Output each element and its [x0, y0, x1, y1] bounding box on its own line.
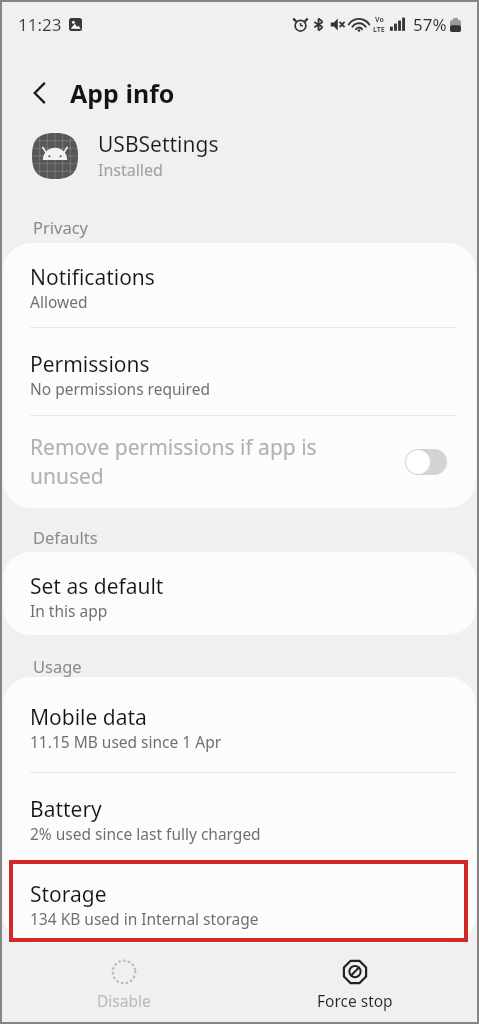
button[interactable]: Battery: [3, 773, 476, 860]
staticText: 57%: [413, 13, 447, 36]
staticText: Defaults: [33, 526, 98, 548]
staticText: Permissions: [30, 350, 150, 379]
staticText: In this app: [30, 600, 108, 621]
staticText: Force stop: [317, 990, 393, 1011]
button[interactable]: Notifications: [3, 243, 476, 327]
staticText: Disable: [97, 990, 151, 1011]
staticText: Battery: [30, 795, 102, 824]
button[interactable]: Force stop: [239, 949, 471, 1022]
staticText: Mobile data: [30, 703, 147, 732]
staticText: Allowed: [30, 291, 88, 312]
staticText: Vo: [375, 15, 384, 25]
staticText: 11:23: [18, 13, 62, 36]
staticText: 2% used since last fully charged: [30, 823, 261, 844]
staticText: 134 KB used in Internal storage: [30, 908, 259, 929]
button[interactable]: Back: [22, 75, 58, 111]
button[interactable]: Permissions: [3, 328, 476, 415]
button[interactable]: Disable: [8, 949, 239, 1022]
staticText: No permissions required: [30, 378, 210, 399]
staticText: Installed: [98, 159, 163, 181]
staticText: LTE: [373, 25, 385, 35]
staticText: 11.15 MB used since 1 Apr: [30, 731, 222, 752]
staticText: USBSettings: [98, 130, 219, 159]
button[interactable]: Set as default: [3, 552, 476, 635]
staticText: Storage: [30, 880, 107, 909]
staticText: App info: [70, 76, 175, 110]
button[interactable]: Storage: [3, 861, 476, 943]
staticText: Set as default: [30, 572, 164, 601]
button[interactable]: Remove permissions if app is unused: [3, 416, 476, 508]
staticText: Remove permissions if app is unused: [30, 433, 330, 491]
staticText: Notifications: [30, 263, 155, 292]
staticText: Usage: [33, 655, 82, 677]
button[interactable]: Mobile data: [3, 677, 476, 772]
staticText: Privacy: [33, 216, 89, 238]
